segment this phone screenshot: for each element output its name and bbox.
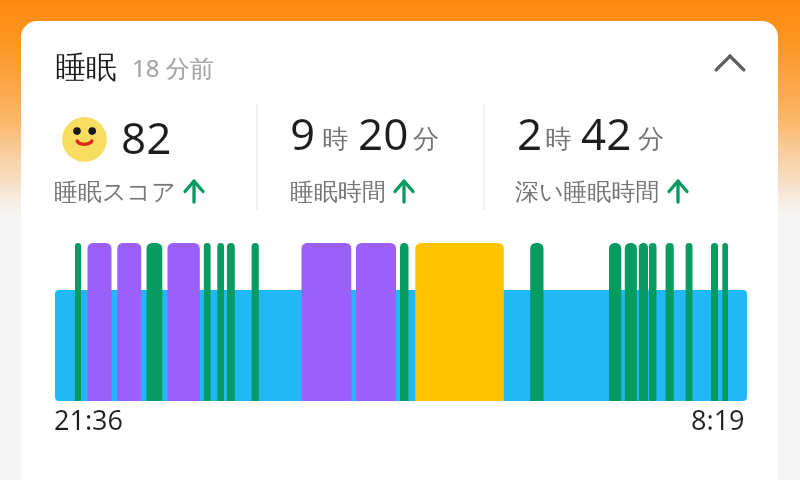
staticText: 睡眠 <box>55 48 117 87</box>
staticText: 2 <box>517 103 543 163</box>
staticText: 時 <box>322 123 348 156</box>
button[interactable]: 睡眠 <box>21 21 778 480</box>
staticText: 分 <box>638 123 664 156</box>
staticText: 睡眠時間 <box>290 177 386 207</box>
button[interactable]: Sleep stages chart <box>21 221 778 421</box>
staticText: 睡眠スコア <box>54 177 176 207</box>
staticText: 82 <box>121 107 172 167</box>
button[interactable]: 深い睡眠時間 <box>515 177 688 207</box>
button[interactable]: Collapse <box>702 35 758 91</box>
staticText: 42 <box>581 103 632 163</box>
button[interactable]: 睡眠時間 <box>290 177 414 207</box>
staticText: 深い睡眠時間 <box>515 177 660 207</box>
staticText: 分 <box>413 123 439 156</box>
staticText: 21:36 <box>54 401 124 438</box>
staticText: 9 <box>290 103 316 163</box>
staticText: 8:19 <box>691 401 745 438</box>
staticText: 20 <box>358 103 409 163</box>
button[interactable]: 睡眠スコア <box>54 177 204 207</box>
staticText: 時 <box>545 123 571 156</box>
staticText: 18 分前 <box>132 51 214 84</box>
